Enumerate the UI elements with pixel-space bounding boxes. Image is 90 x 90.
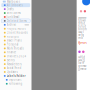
button[interactable]: Archive [0, 23, 31, 27]
staticText: Sent Items [6, 11, 20, 15]
staticText: Deleted Items [6, 19, 26, 23]
staticText: Finance [6, 51, 16, 54]
button[interactable]: Events [0, 58, 31, 62]
staticText: Following [8, 82, 22, 85]
button[interactable]: Project Notes [0, 27, 31, 31]
staticText: hhwn [78, 19, 86, 22]
staticText: ww fj [78, 58, 85, 62]
button[interactable]: Sent Items [0, 11, 31, 15]
staticText: lw ff [78, 61, 84, 65]
staticText: Important [8, 78, 21, 82]
button[interactable]: Client Records [0, 31, 31, 35]
button[interactable]: Receipts [0, 35, 31, 38]
staticText: jjmnw [78, 67, 86, 71]
button[interactable]: Invoices 2024 [0, 54, 31, 58]
button[interactable]: Updates [0, 70, 31, 74]
staticText: Drafts [6, 7, 13, 11]
staticText: m b [78, 36, 83, 40]
button[interactable]: Finance [0, 50, 31, 54]
staticText: vefg [78, 33, 84, 37]
staticText: Labels Folder [6, 74, 25, 78]
staticText: Project Notes [6, 27, 25, 30]
staticText: Archive [6, 23, 16, 26]
button[interactable]: Newsletters [0, 62, 31, 66]
staticText: flfhd [78, 22, 85, 25]
staticText: vvw l [78, 30, 84, 34]
staticText: fjmn [78, 40, 86, 45]
staticText: Work Threads [6, 47, 23, 50]
staticText: fufud [78, 25, 86, 28]
staticText: Mailboxes [7, 0, 20, 3]
staticText: wlfjd [78, 55, 85, 59]
staticText: Social Feed [6, 66, 21, 70]
button[interactable]: Mailboxes [0, 0, 31, 3]
button[interactable]: Important [0, 78, 31, 82]
staticText: Updates [6, 70, 17, 74]
button[interactable]: Social Feed [0, 66, 31, 70]
button[interactable]: Personal [0, 42, 31, 46]
staticText: bnnm [78, 27, 86, 31]
staticText: Newsletters [6, 62, 21, 66]
staticText: Travel Plans [6, 39, 21, 42]
staticText: Client Records [6, 31, 27, 34]
button[interactable]: Following [0, 82, 31, 86]
staticText: Invoices 2024 [6, 54, 26, 58]
button[interactable]: Travel Plans [0, 39, 31, 42]
button[interactable]: Deleted Items [0, 19, 31, 23]
staticText: Personal [6, 43, 18, 46]
staticText: Junk Email [6, 15, 19, 19]
button[interactable]: Drafts [0, 7, 31, 11]
staticText: gnmw [78, 64, 86, 68]
button[interactable]: Junk Email [0, 15, 31, 19]
button[interactable]: All Inboxes [0, 3, 31, 7]
staticText: All Inboxes [6, 3, 22, 7]
staticText: Receipts [6, 35, 18, 38]
staticText: wwww [78, 16, 86, 19]
button[interactable]: Labels Folder [0, 74, 31, 78]
button[interactable]: Work Threads [0, 46, 31, 50]
staticText: Events [6, 58, 14, 62]
